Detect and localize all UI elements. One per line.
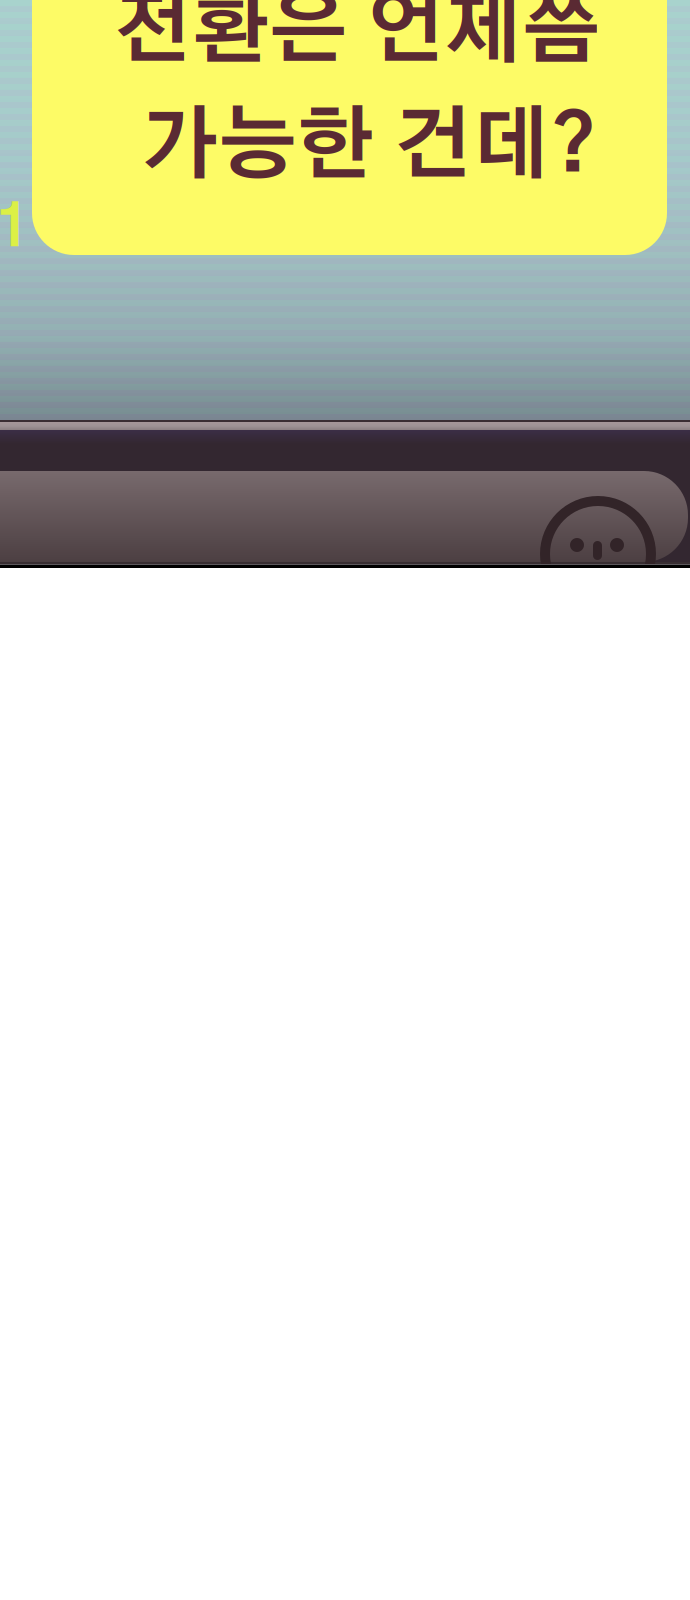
staticText: 1 — [0, 200, 30, 257]
staticText: 가능한 건데? — [140, 109, 596, 187]
staticText: 전환은 언제쯤 — [113, 0, 600, 72]
